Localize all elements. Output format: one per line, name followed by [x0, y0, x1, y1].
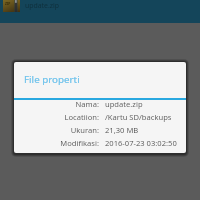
button[interactable]: Locatiion:: [14, 110, 186, 123]
staticText: File properti: [24, 73, 80, 86]
button[interactable]: Zip archive: [3, 0, 20, 12]
button[interactable]: Modifikasi:: [14, 136, 186, 149]
button[interactable]: update.zip: [25, 0, 85, 23]
staticText: Nama:: [14, 99, 99, 109]
button[interactable]: Ukuran:: [14, 123, 186, 136]
staticText: Locatiion:: [14, 112, 99, 122]
button[interactable]: File properti: [14, 62, 186, 153]
staticText: update.zip: [25, 1, 60, 10]
staticText: 21,30 MB: [105, 125, 139, 135]
staticText: Modifikasi:: [14, 138, 99, 148]
staticText: 2016-07-23 03:02:50: [105, 138, 177, 148]
staticText: /Kartu SD/backups: [105, 112, 172, 122]
staticText: ZIP: [5, 1, 11, 6]
staticText: update.zip: [105, 99, 143, 109]
staticText: Ukuran:: [14, 125, 99, 135]
button[interactable]: Nama:: [14, 97, 186, 110]
